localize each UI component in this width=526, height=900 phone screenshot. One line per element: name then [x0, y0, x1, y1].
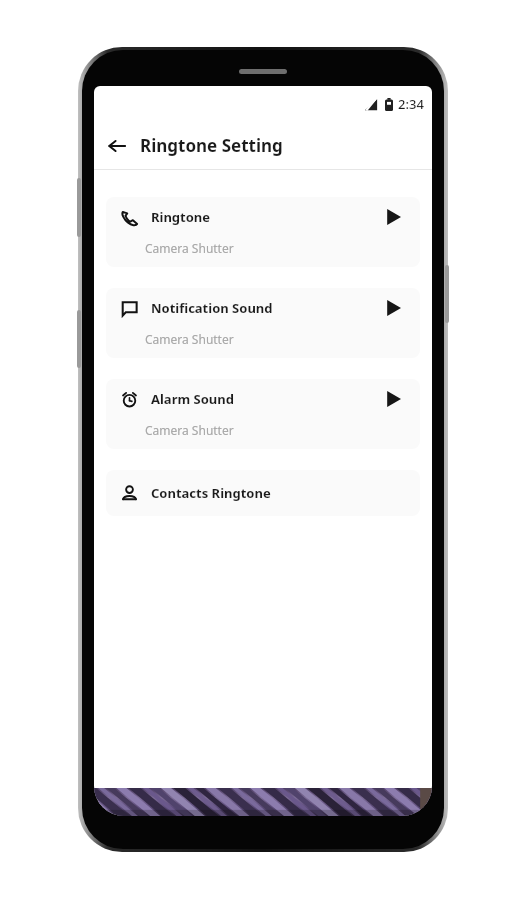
button[interactable]: Alarm Sound	[106, 379, 420, 449]
staticText: Contacts Ringtone	[151, 484, 271, 502]
staticText: 2:34	[398, 95, 424, 113]
staticText: Ringtone	[151, 208, 211, 226]
staticText: Notification Sound	[151, 299, 273, 317]
button[interactable]: Play	[380, 204, 406, 230]
staticText: Ringtone Setting	[140, 134, 283, 157]
button[interactable]: Contacts Ringtone	[106, 470, 420, 516]
button[interactable]: Ringtone	[106, 197, 420, 267]
staticText: Alarm Sound	[151, 390, 234, 408]
button[interactable]: Play	[380, 295, 406, 321]
staticText: Camera Shutter	[145, 240, 234, 256]
staticText: Camera Shutter	[145, 331, 234, 347]
button[interactable]: Back	[100, 129, 134, 163]
staticText: Camera Shutter	[145, 422, 234, 438]
button[interactable]: Play	[380, 386, 406, 412]
button[interactable]: Notification Sound	[106, 288, 420, 358]
